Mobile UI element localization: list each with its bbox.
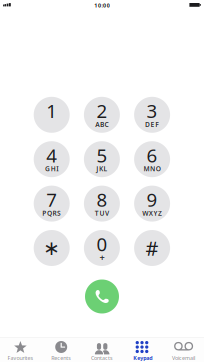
button[interactable]: Keypad (122, 338, 163, 362)
button[interactable]: ∗ (34, 230, 70, 266)
staticText: 0 (96, 232, 107, 256)
button[interactable]: Voicemail (163, 338, 204, 362)
button[interactable]: 6 (134, 141, 170, 177)
button[interactable]: Contacts (82, 338, 122, 362)
button[interactable]: Favourites (0, 338, 41, 362)
staticText: 2 (96, 98, 107, 123)
staticText: GHI (45, 164, 58, 173)
staticText: + (99, 251, 104, 264)
staticText: Voicemail (172, 354, 195, 362)
staticText: TUV (95, 209, 109, 218)
button[interactable]: 8 (84, 186, 120, 222)
button[interactable]: 0 (84, 230, 120, 266)
button[interactable]: Recents (41, 338, 82, 362)
button[interactable]: 3 (134, 97, 170, 133)
staticText: MNO (143, 164, 161, 173)
button[interactable]: 1 (34, 97, 70, 133)
button[interactable]: 7 (34, 186, 70, 222)
staticText: 1 (46, 98, 57, 123)
staticText: 9 (147, 187, 158, 212)
staticText: Recents (51, 354, 71, 362)
staticText: 3 (147, 98, 158, 123)
staticText: Favourites (7, 354, 33, 362)
staticText: ∗ (43, 237, 60, 259)
staticText: WXYZ (142, 209, 162, 218)
staticText: 5 (96, 143, 107, 168)
button[interactable]: 9 (134, 186, 170, 222)
staticText: ABC (95, 120, 108, 129)
button[interactable]: 5 (84, 141, 120, 177)
staticText: 6 (147, 143, 158, 168)
button[interactable]: # (134, 230, 170, 266)
staticText: 10:00 (94, 2, 110, 9)
staticText: 4 (46, 143, 57, 168)
button[interactable]: 4 (34, 141, 70, 177)
staticText: JKL (96, 164, 107, 173)
staticText: DEF (145, 120, 159, 129)
staticText: Contacts (91, 354, 113, 362)
button[interactable]: Call (85, 279, 119, 313)
staticText: 7 (46, 187, 57, 212)
staticText: PQRS (42, 209, 61, 218)
staticText: # (146, 235, 159, 261)
button[interactable]: 2 (84, 97, 120, 133)
staticText: 8 (96, 187, 107, 212)
staticText: Keypad (133, 354, 152, 362)
